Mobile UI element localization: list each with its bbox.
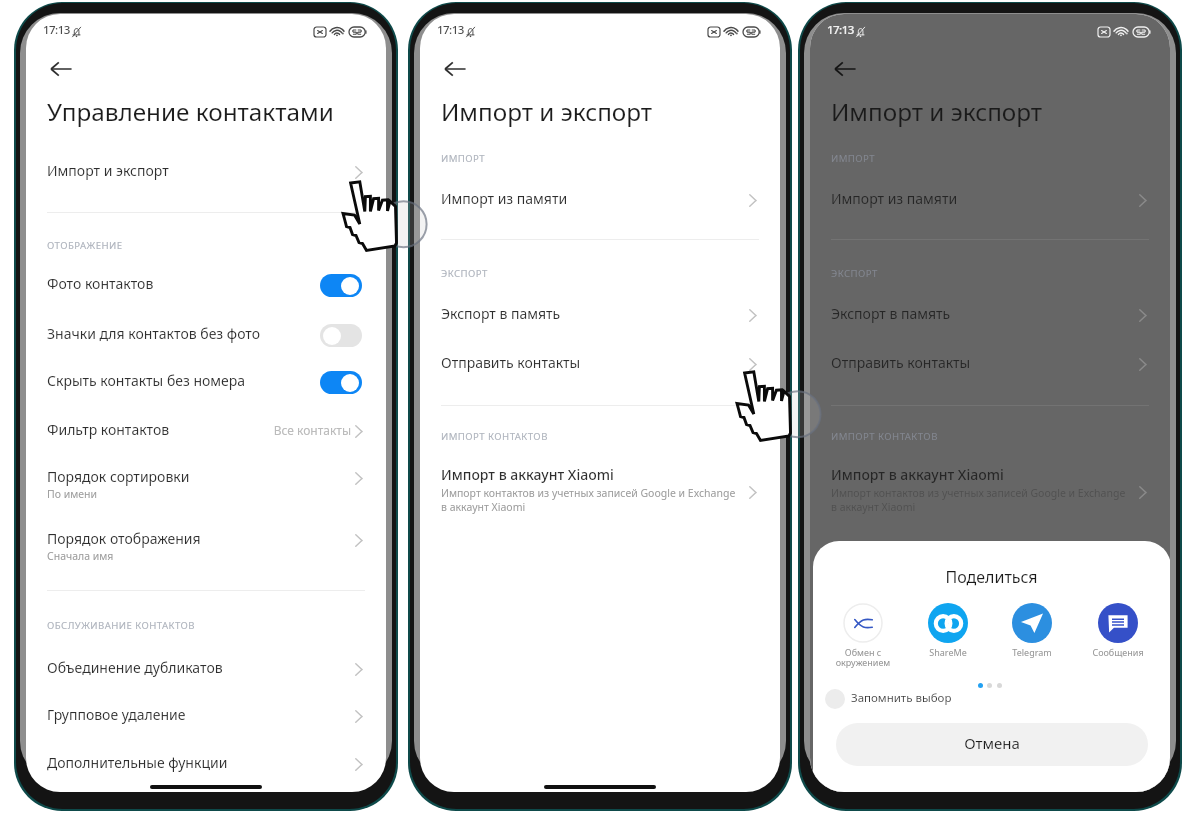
- button[interactable]: Back: [434, 48, 476, 90]
- staticText: Фото контактов: [47, 274, 327, 293]
- staticText: 17:13: [43, 22, 103, 38]
- staticText: Telegram: [994, 646, 1070, 658]
- button[interactable]: Скрыть контакты без номера: [26, 359, 386, 405]
- button[interactable]: Значки для контактов без фото: [26, 312, 386, 358]
- staticText: Порядок сортировки: [47, 467, 337, 486]
- staticText: Скрыть контакты без номера: [47, 371, 327, 390]
- button[interactable]: Импорт и экспорт: [26, 149, 386, 195]
- button[interactable]: [836, 723, 1148, 766]
- staticText: Управление контактами: [47, 95, 377, 128]
- button[interactable]: Отправить контакты: [810, 341, 1170, 387]
- staticText: Импорт контактов из учетных записей Goog…: [441, 486, 741, 500]
- staticText: Импорт контактов из учетных записей Goog…: [831, 486, 1131, 500]
- staticText: Импорт из памяти: [831, 189, 1121, 208]
- button[interactable]: [810, 685, 1010, 713]
- button[interactable]: [1002, 600, 1062, 676]
- staticText: 17:13: [437, 22, 497, 38]
- staticText: Все контакты: [206, 422, 351, 438]
- staticText: Импорт в аккаунт Xiaomi: [441, 465, 731, 484]
- staticText: Импорт из памяти: [441, 189, 731, 208]
- staticText: Поделиться: [813, 566, 1170, 588]
- staticText: Экспорт в память: [831, 304, 1121, 323]
- button[interactable]: Импорт из памяти: [810, 177, 1170, 223]
- button[interactable]: Отправить контакты: [420, 341, 780, 387]
- staticText: в аккаунт Xiaomi: [441, 500, 741, 514]
- staticText: ИМПОРТ: [831, 152, 1170, 165]
- other: Off: [320, 324, 362, 347]
- staticText: Импорт и экспорт: [441, 95, 771, 128]
- button[interactable]: Импорт из памяти: [420, 177, 780, 223]
- staticText: Объединение дубликатов: [47, 658, 337, 677]
- other: On: [320, 371, 362, 394]
- button[interactable]: Групповое удаление: [26, 693, 386, 739]
- button[interactable]: Экспорт в память: [810, 292, 1170, 338]
- staticText: ИМПОРТ КОНТАКТОВ: [831, 430, 1170, 443]
- staticText: ЭКСПОРТ: [441, 267, 780, 280]
- staticText: окружением: [825, 656, 901, 668]
- button[interactable]: Фильтр контактов: [26, 408, 386, 454]
- staticText: Импорт и экспорт: [47, 161, 337, 180]
- staticText: Экспорт в память: [441, 304, 731, 323]
- button[interactable]: Импорт в аккаунт Xiaomi: [420, 460, 780, 524]
- staticText: Значки для контактов без фото: [47, 324, 327, 343]
- button[interactable]: Фото контактов: [26, 262, 386, 308]
- button[interactable]: [833, 600, 893, 676]
- staticText: Отмена: [836, 733, 1148, 753]
- button[interactable]: Дополнительные функции: [26, 741, 386, 787]
- staticText: Отправить контакты: [831, 353, 1121, 372]
- staticText: 17:13: [827, 22, 887, 38]
- staticText: Запомнить выбор: [851, 690, 1051, 706]
- staticText: Отправить контакты: [441, 353, 731, 372]
- staticText: Дополнительные функции: [47, 753, 337, 772]
- button[interactable]: Объединение дубликатов: [26, 646, 386, 692]
- button[interactable]: [918, 600, 978, 676]
- staticText: ОБСЛУЖИВАНИЕ КОНТАКТОВ: [47, 619, 386, 632]
- staticText: Сначала имя: [47, 549, 337, 563]
- staticText: в аккаунт Xiaomi: [831, 500, 1131, 514]
- button[interactable]: [1088, 600, 1148, 676]
- staticText: Групповое удаление: [47, 705, 337, 724]
- staticText: Фильтр контактов: [47, 420, 337, 439]
- staticText: ИМПОРТ КОНТАКТОВ: [441, 430, 780, 443]
- staticText: ОТОБРАЖЕНИЕ: [47, 239, 386, 252]
- other: On: [320, 274, 362, 297]
- button[interactable]: Экспорт в память: [420, 292, 780, 338]
- button[interactable]: Back: [824, 48, 866, 90]
- staticText: ИМПОРТ: [441, 152, 780, 165]
- staticText: Сообщения: [1080, 646, 1156, 658]
- button[interactable]: Порядок сортировки: [26, 449, 386, 507]
- staticText: ЭКСПОРТ: [831, 267, 1170, 280]
- staticText: ShareMe: [910, 646, 986, 658]
- button[interactable]: Back: [40, 48, 82, 90]
- button[interactable]: Порядок отображения: [26, 511, 386, 569]
- button[interactable]: Импорт в аккаунт Xiaomi: [810, 460, 1170, 524]
- staticText: Импорт и экспорт: [831, 95, 1161, 128]
- staticText: По имени: [47, 487, 337, 501]
- staticText: Порядок отображения: [47, 529, 337, 548]
- staticText: Импорт в аккаунт Xiaomi: [831, 465, 1121, 484]
- staticText: Обмен с: [825, 646, 901, 658]
